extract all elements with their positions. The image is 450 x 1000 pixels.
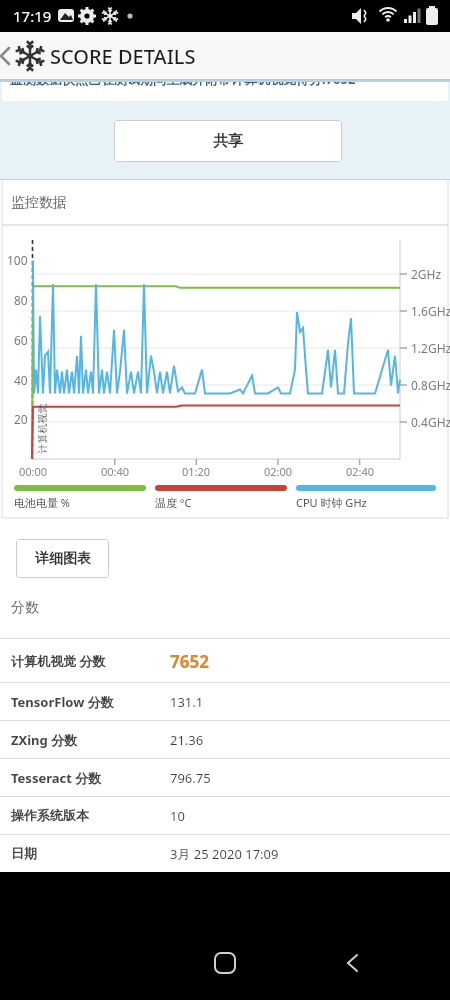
staticText: TensorFlow 分数 xyxy=(11,693,114,711)
staticText: 10 xyxy=(170,807,185,825)
staticText: 02:00 xyxy=(264,464,293,479)
staticText: Tesseract 分数 xyxy=(11,769,102,787)
staticText: 0.4GHz xyxy=(411,414,450,430)
staticText: 监测数据快照已在测试期间生成并附带计算机视觉得分:7652 xyxy=(10,82,356,88)
button[interactable]: 日期 xyxy=(0,835,450,872)
staticText: 796.75 xyxy=(170,769,211,787)
staticText: 2GHz xyxy=(411,266,442,282)
button[interactable] xyxy=(338,943,378,983)
staticText: 操作系统版本 xyxy=(11,807,89,823)
staticText: 电池电量 % xyxy=(14,495,71,510)
staticText: 1.2GHz xyxy=(411,340,450,356)
staticText: 日期 xyxy=(11,845,37,861)
staticText: 计算机视觉 分数 xyxy=(11,652,106,670)
staticText: CPU 时钟 GHz xyxy=(296,495,367,510)
button[interactable]: 操作系统版本 xyxy=(0,797,450,834)
staticText: 00:40 xyxy=(101,464,130,479)
staticText: 21.36 xyxy=(170,731,204,749)
staticText: 共享 xyxy=(213,132,243,151)
button[interactable] xyxy=(205,943,245,983)
staticText: 131.1 xyxy=(170,693,204,711)
staticText: 1.6GHz xyxy=(411,303,450,319)
staticText: 00:00 xyxy=(19,464,48,479)
staticText: ZXing 分数 xyxy=(11,731,78,749)
staticText: 02:40 xyxy=(346,464,375,479)
button[interactable]: ZXing 分数 xyxy=(0,721,450,758)
staticText: 详细图表 xyxy=(35,550,91,568)
button[interactable]: TensorFlow 分数 xyxy=(0,683,450,720)
staticText: 温度 °C xyxy=(155,495,192,510)
staticText: 监控数据 xyxy=(11,194,67,212)
staticText: 60 xyxy=(14,332,28,348)
staticText: 7652 xyxy=(170,650,209,673)
staticText: 100 xyxy=(7,252,28,268)
staticText: 20 xyxy=(14,411,28,427)
staticText: 分数 xyxy=(11,599,39,617)
button[interactable]: 详细图表 xyxy=(16,539,109,578)
button[interactable] xyxy=(0,32,450,80)
staticText: 01:20 xyxy=(182,464,211,479)
staticText: 17:19 xyxy=(13,6,52,26)
button[interactable]: Tesseract 分数 xyxy=(0,759,450,796)
staticText: 0.8GHz xyxy=(411,377,450,393)
staticText: 3月 25 2020 17:09 xyxy=(170,845,279,863)
staticText: SCORE DETAILS xyxy=(50,43,196,70)
button[interactable]: 计算机视觉 分数 xyxy=(0,639,450,682)
staticText: 计算机视觉 xyxy=(35,403,48,453)
staticText: 40 xyxy=(14,372,28,388)
button[interactable]: 共享 xyxy=(114,120,342,162)
staticText: 80 xyxy=(14,292,28,308)
